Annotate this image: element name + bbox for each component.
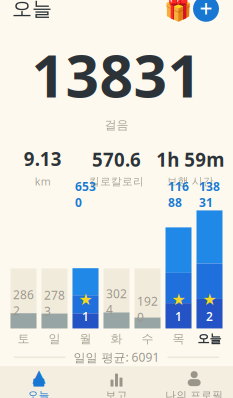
staticText: 킬로칼로리 bbox=[89, 175, 144, 188]
staticText: 1 bbox=[175, 308, 182, 324]
staticText: 3024 bbox=[106, 286, 127, 317]
staticText: 보고 bbox=[105, 389, 127, 398]
staticText: 보행 시간 bbox=[167, 175, 214, 188]
staticText: 일 bbox=[48, 331, 60, 346]
staticText: 1920 bbox=[137, 178, 158, 210]
staticText: ★ bbox=[171, 290, 185, 308]
staticText: 11688 bbox=[168, 178, 189, 210]
staticText: 570.6 bbox=[92, 147, 141, 172]
staticText: 1 bbox=[82, 308, 89, 324]
staticText: 오늘 bbox=[197, 331, 221, 346]
staticText: 화 bbox=[110, 331, 122, 346]
staticText: 토 bbox=[17, 331, 29, 346]
staticText: 🎁 bbox=[164, 0, 192, 22]
staticText: ★ bbox=[202, 290, 216, 308]
staticText: 걸음 bbox=[104, 118, 128, 132]
staticText: 수 bbox=[141, 331, 153, 346]
staticText: 오늘 bbox=[28, 389, 50, 398]
staticText: 2783 bbox=[44, 178, 65, 210]
staticText: 2 bbox=[206, 308, 213, 324]
staticText: ★ bbox=[78, 290, 92, 308]
staticText: km bbox=[35, 174, 51, 188]
staticText: 일일 평균: 6091 bbox=[73, 349, 159, 365]
staticText: + bbox=[199, 0, 212, 24]
button[interactable]: Gifts bbox=[165, 0, 191, 22]
button[interactable]: 보고 bbox=[78, 366, 155, 398]
button[interactable]: Add bbox=[191, 0, 221, 24]
staticText: 나의 프로필 bbox=[165, 389, 223, 398]
staticText: 오늘 bbox=[12, 0, 52, 21]
staticText: 목 bbox=[172, 331, 184, 346]
staticText: 1h 59m bbox=[156, 147, 224, 172]
button[interactable]: 나의 프로필 bbox=[155, 366, 233, 398]
staticText: ▲ bbox=[32, 366, 45, 385]
staticText: 2783 bbox=[44, 287, 65, 319]
staticText: 13831 bbox=[199, 178, 220, 210]
staticText: 13831 bbox=[31, 36, 201, 114]
staticText: 9.13 bbox=[24, 146, 62, 171]
staticText: 월 bbox=[79, 331, 91, 346]
staticText: 6530 bbox=[75, 178, 96, 210]
staticText: 2862 bbox=[13, 287, 34, 319]
button[interactable]: ▲ bbox=[0, 366, 78, 398]
staticText: 3024 bbox=[106, 178, 127, 210]
staticText: 1920 bbox=[137, 293, 158, 325]
